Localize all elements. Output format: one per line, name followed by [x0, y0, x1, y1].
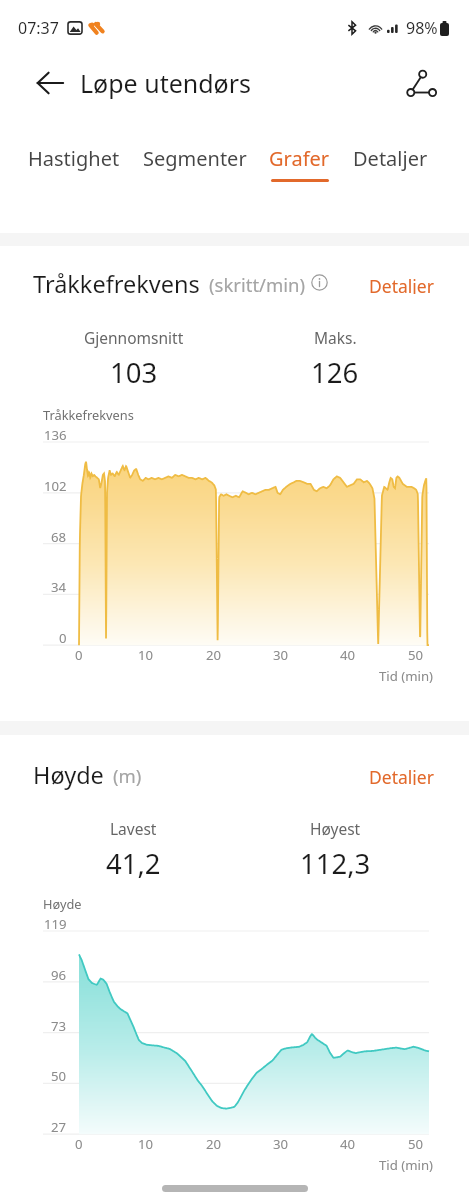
button[interactable]: Back [24, 57, 76, 109]
button[interactable]: Segmenter [141, 139, 249, 188]
staticText: Detaljer [353, 145, 428, 172]
staticText: Løpe utendørs [80, 66, 252, 100]
staticText: Tråkkefrekvens [33, 268, 200, 300]
staticText: Detaljer [369, 765, 434, 785]
button[interactable]: Detaljer [351, 139, 430, 188]
staticText: 73 [51, 1017, 67, 1035]
staticText: 68 [51, 528, 67, 546]
staticText: Maks. [314, 327, 357, 348]
staticText: 136 [44, 426, 67, 444]
staticText: Høyest [310, 818, 361, 839]
staticText: 0 [75, 1135, 83, 1153]
staticText: 30 [273, 1135, 289, 1153]
staticText: 30 [273, 646, 289, 664]
staticText: 126 [311, 354, 359, 391]
staticText: Gjennomsnitt [84, 327, 184, 348]
staticText: Høyde [33, 759, 104, 791]
button[interactable]: Detaljer [363, 759, 440, 791]
staticText: 34 [51, 578, 67, 596]
staticText: 20 [206, 646, 222, 664]
staticText: 50 [408, 646, 424, 664]
staticText: Segmenter [143, 145, 247, 172]
staticText: 96 [51, 966, 67, 984]
staticText: Høyde [43, 895, 82, 912]
staticText: Tråkkefrekvens [43, 406, 134, 423]
staticText: 50 [408, 1135, 424, 1153]
staticText: 112,3 [300, 845, 371, 882]
staticText: 0 [59, 629, 67, 647]
staticText: Tid (min) [379, 667, 434, 685]
staticText: 41,2 [106, 845, 161, 882]
staticText: (m) [113, 763, 142, 788]
staticText: 40 [340, 1135, 356, 1153]
staticText: 40 [340, 646, 356, 664]
staticText: Lavest [110, 818, 157, 839]
staticText: 98% [406, 17, 438, 39]
staticText: 102 [44, 477, 67, 495]
staticText: Detaljer [369, 274, 434, 294]
staticText: 50 [51, 1067, 67, 1085]
staticText: 103 [110, 354, 158, 391]
staticText: 07:37 [18, 17, 59, 39]
staticText: 119 [44, 915, 67, 933]
button[interactable]: Share [395, 57, 447, 109]
staticText: Tid (min) [379, 1156, 434, 1174]
staticText: Hastighet [28, 145, 120, 172]
staticText: Grafer [269, 145, 330, 172]
button[interactable]: Detaljer [363, 268, 440, 300]
staticText: 20 [206, 1135, 222, 1153]
button[interactable]: Grafer [267, 139, 332, 188]
staticText: 10 [138, 646, 154, 664]
staticText: 0 [75, 646, 83, 664]
staticText: (skritt/min) [209, 272, 305, 297]
staticText: 27 [51, 1118, 67, 1136]
button[interactable]: Hastighet [26, 139, 122, 188]
staticText: 10 [138, 1135, 154, 1153]
